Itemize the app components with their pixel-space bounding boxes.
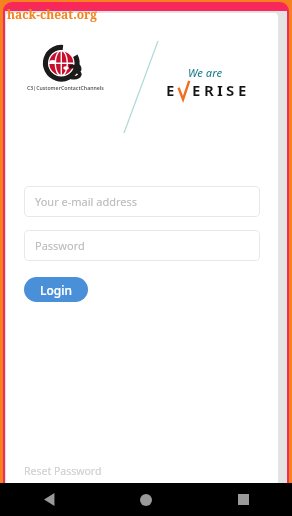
button[interactable]: Recent apps [223, 483, 263, 516]
button[interactable]: Reset Password [24, 462, 102, 480]
staticText: C3|CustomerContactChannels [27, 84, 104, 91]
staticText: Your e-mail address [35, 194, 138, 209]
button[interactable]: Password [24, 230, 260, 261]
staticText: E [192, 80, 201, 100]
button[interactable]: Home [126, 483, 166, 516]
button[interactable]: Back [29, 483, 69, 516]
staticText: We are [188, 65, 223, 80]
button[interactable]: Your e-mail address [24, 186, 260, 217]
staticText: R [204, 80, 214, 100]
staticText: S [226, 80, 235, 100]
staticText: Login [40, 282, 72, 298]
staticText: hack-cheat.org [7, 6, 98, 22]
staticText: E [166, 80, 175, 100]
staticText: Reset Password [24, 464, 102, 478]
staticText: I [217, 80, 223, 100]
staticText: E [238, 80, 247, 100]
staticText: Password [35, 238, 85, 253]
button[interactable]: Login [24, 277, 88, 302]
